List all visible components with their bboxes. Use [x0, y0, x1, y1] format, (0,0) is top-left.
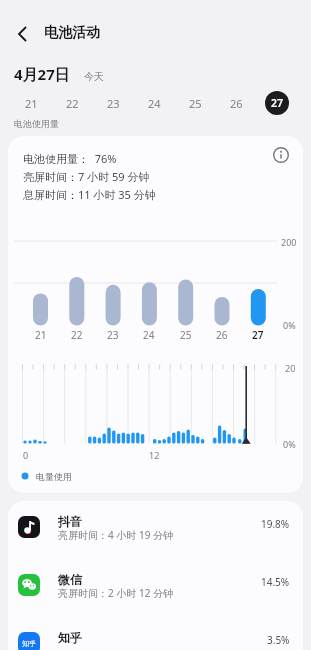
button[interactable]: 26 [218, 89, 254, 117]
button[interactable]: 25 [177, 89, 213, 117]
staticText: 200 [281, 236, 297, 248]
staticText: 0% [283, 319, 296, 331]
staticText: 0% [283, 438, 296, 450]
staticText: 25 [189, 96, 202, 111]
staticText: 24 [143, 328, 155, 341]
staticText: 27 [252, 328, 264, 341]
staticText: 电池活动 [44, 24, 100, 42]
button[interactable]: 21 [13, 89, 49, 117]
staticText: 23 [107, 328, 119, 341]
staticText: 知乎 [22, 639, 36, 648]
staticText: 25 [180, 328, 192, 341]
staticText: 22 [71, 328, 83, 341]
staticText: 微信 [58, 572, 82, 587]
staticText: 22 [66, 96, 79, 111]
button[interactable]: 24 [136, 89, 172, 117]
button[interactable] [8, 22, 38, 46]
staticText: 23 [107, 96, 120, 111]
staticText: 电池使用量： 76% [23, 151, 117, 166]
staticText: 电池使用量 [14, 118, 59, 129]
staticText: 19.8% [261, 517, 290, 531]
staticText: 4月27日 [14, 64, 70, 84]
button[interactable] [8, 564, 303, 622]
staticText: 20 [285, 362, 296, 374]
staticText: 26 [230, 96, 243, 111]
staticText: 电量使用 [36, 471, 72, 482]
button[interactable] [266, 140, 296, 170]
staticText: 息屏时间：11 小时 35 分钟 [23, 187, 156, 202]
staticText: 14.5% [261, 575, 290, 589]
staticText: 0 [23, 449, 29, 461]
staticText: 27 [271, 96, 284, 110]
staticText: 21 [25, 96, 38, 111]
staticText: 21 [35, 328, 47, 341]
staticText: 3.5% [267, 633, 290, 647]
staticText: 24 [148, 96, 161, 111]
staticText: 亮屏时间：2 小时 12 分钟 [58, 586, 173, 600]
staticText: 知乎 [58, 630, 82, 645]
button[interactable] [8, 622, 303, 650]
staticText: 亮屏时间：7 小时 59 分钟 [23, 169, 150, 184]
staticText: 抖音 [58, 514, 82, 529]
button[interactable]: 22 [54, 89, 90, 117]
button[interactable] [8, 506, 303, 564]
staticText: 12 [149, 449, 160, 461]
staticText: 26 [216, 328, 228, 341]
staticText: 亮屏时间：4 小时 19 分钟 [58, 528, 173, 542]
staticText: 今天 [84, 70, 104, 83]
button[interactable]: 23 [95, 89, 131, 117]
button[interactable]: 27 [265, 91, 289, 115]
